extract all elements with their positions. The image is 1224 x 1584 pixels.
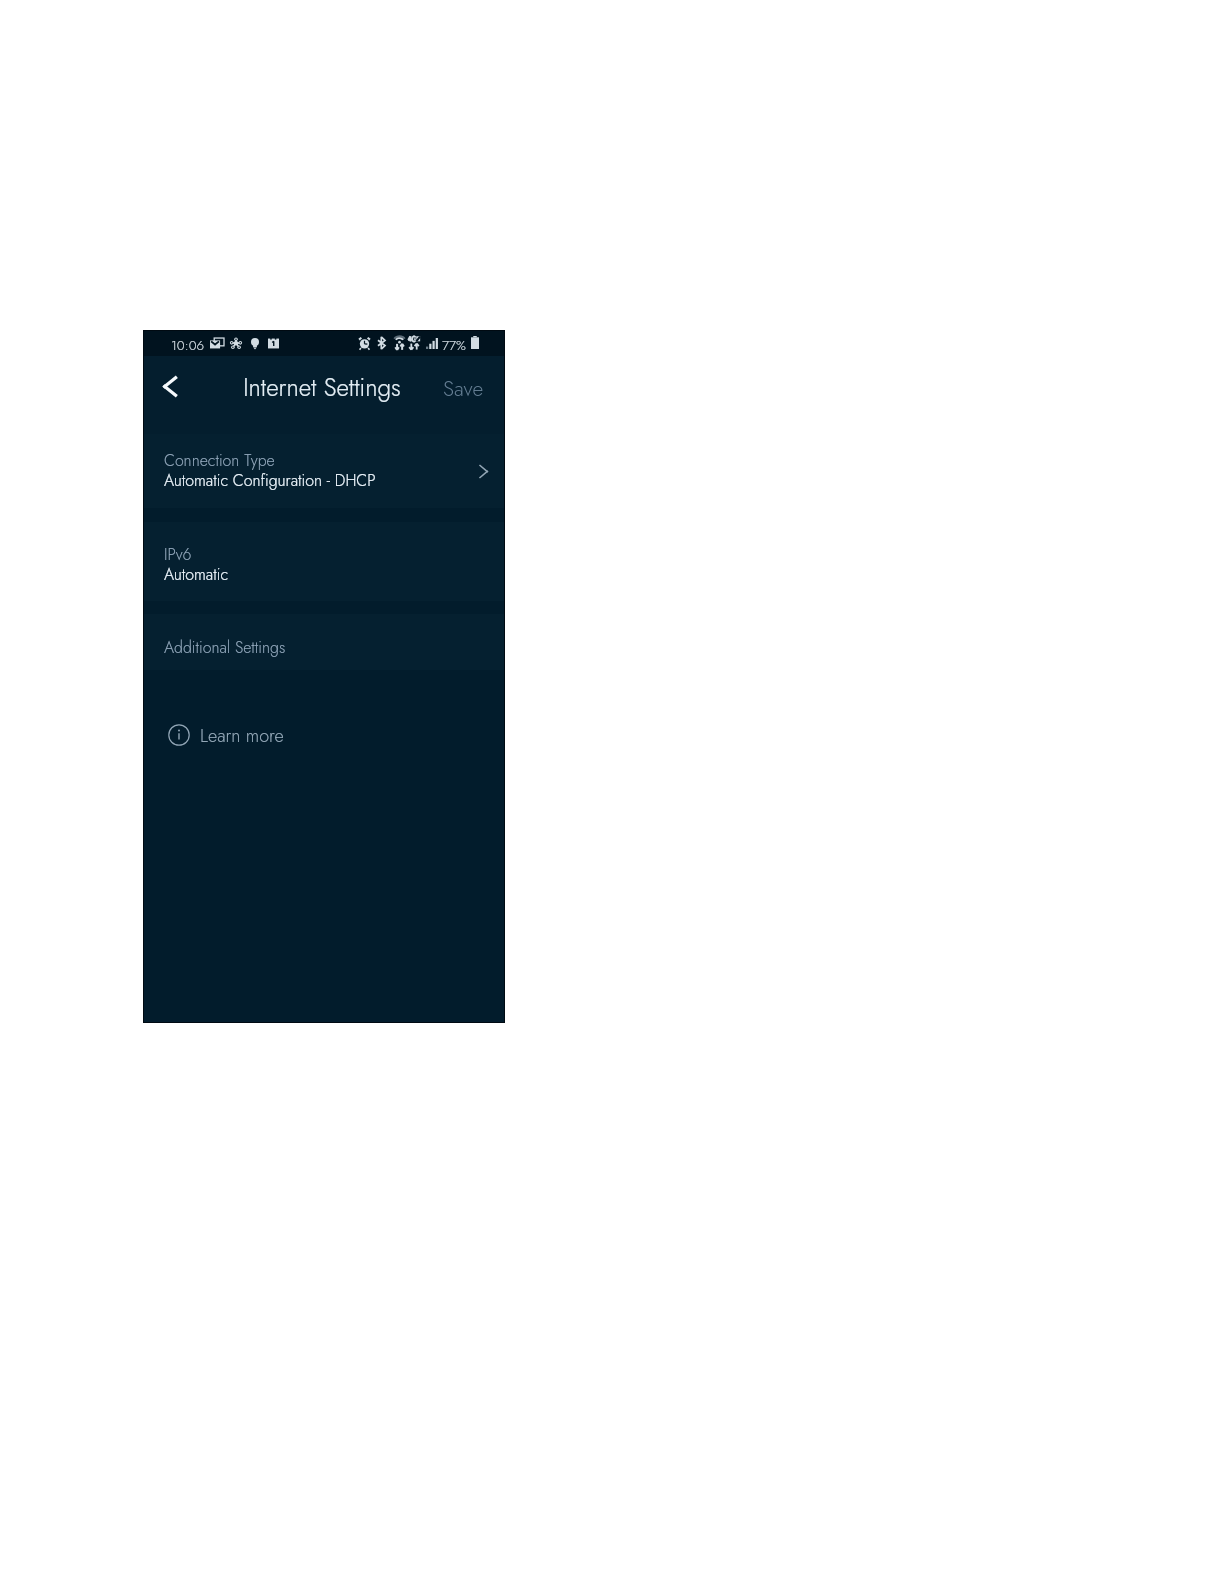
staticText: Additional Settings bbox=[164, 636, 286, 659]
staticText: Connection Type bbox=[164, 449, 275, 472]
button[interactable]: Back bbox=[146, 362, 194, 410]
staticText: Save bbox=[443, 374, 484, 402]
button[interactable]: IPv6 bbox=[144, 522, 504, 601]
button[interactable]: Save bbox=[423, 360, 504, 416]
button[interactable]: Learn more bbox=[164, 718, 288, 752]
staticText: Learn more bbox=[200, 723, 284, 749]
button[interactable]: Connection Type bbox=[144, 434, 504, 508]
button[interactable]: Additional Settings bbox=[144, 614, 504, 670]
staticText: Automatic bbox=[164, 563, 229, 586]
staticText: IPv6 bbox=[164, 543, 192, 566]
staticText: 10:06 bbox=[171, 336, 205, 356]
staticText: Internet Settings bbox=[243, 370, 401, 405]
staticText: Automatic Configuration - DHCP bbox=[164, 469, 376, 492]
staticText: 77% bbox=[442, 336, 466, 356]
